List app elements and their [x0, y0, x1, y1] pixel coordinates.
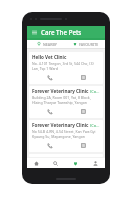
button[interactable]: Favourites [65, 158, 85, 168]
button[interactable]: Call clinic [32, 73, 66, 82]
button[interactable]: Search [46, 158, 65, 168]
button[interactable]: Profile [85, 158, 105, 168]
button[interactable]: FAVOURITE [66, 40, 105, 48]
button[interactable]: Open navigation menu [27, 26, 105, 38]
staticText: Building 2A, Room 001, Yat, 8 Block, Hla… [32, 95, 100, 105]
staticText: Forever Veterinary Clinic [32, 88, 89, 94]
staticText: NEARBY [43, 42, 57, 47]
button[interactable]: NEARBY [27, 40, 66, 48]
button[interactable]: Show on map [66, 141, 100, 150]
staticText: No. 4-101 Teegon, 3rd St, 544 Cho, (3) L… [32, 61, 100, 71]
staticText: (Compound) [90, 89, 100, 94]
staticText: FAVOURITE [79, 42, 99, 47]
staticText: Care The Pets [41, 28, 82, 36]
button[interactable]: Home [27, 158, 46, 168]
staticText: Forever Veterinary Clinic [32, 122, 89, 128]
staticText: (Compound) [90, 123, 100, 128]
button[interactable]: Forever Veterinary Clinic [29, 120, 103, 152]
button[interactable]: Show on map [66, 107, 100, 116]
button[interactable]: Call clinic [32, 141, 66, 150]
staticText: No 54-B 4-RN, 4-54 Street, Kan Ywa Gyi K… [32, 129, 100, 139]
button[interactable]: Hello Vet Clinic [29, 52, 103, 84]
staticText: Hello Vet Clinic [32, 54, 67, 60]
button[interactable]: Forever Veterinary Clinic [29, 86, 103, 118]
button[interactable]: Call clinic [32, 107, 66, 116]
button[interactable]: Show on map [66, 73, 100, 82]
button[interactable]: Open navigation menu [30, 28, 38, 36]
